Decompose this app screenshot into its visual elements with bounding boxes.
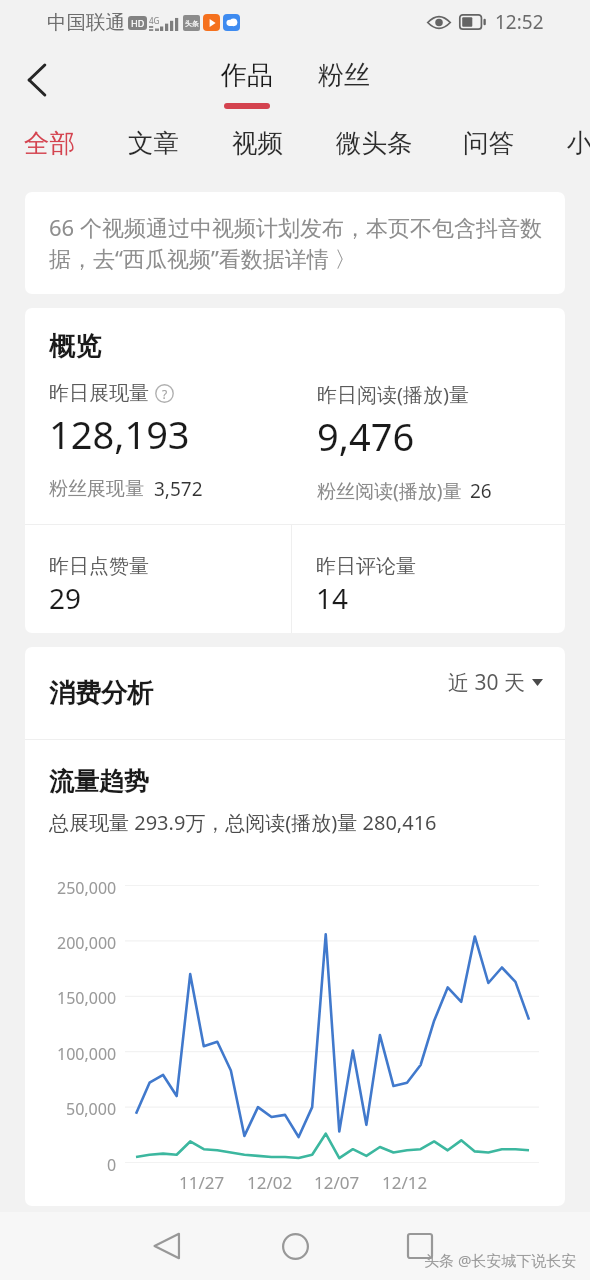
staticText: 全部: [24, 127, 75, 159]
button[interactable]: 文章: [128, 127, 179, 159]
button[interactable]: 小: [567, 127, 590, 159]
button[interactable]: 全部: [24, 127, 75, 159]
button[interactable]: Recents: [392, 1218, 448, 1274]
button[interactable]: 问答: [463, 127, 514, 159]
staticText: 12/12: [382, 1171, 428, 1194]
staticText: 12/07: [314, 1171, 360, 1194]
staticText: 昨日点赞量: [49, 554, 149, 579]
staticText: 26: [470, 478, 492, 504]
staticText: 昨日阅读(播放)量: [317, 381, 469, 408]
staticText: 0: [107, 1154, 117, 1176]
staticText: 粉丝阅读(播放)量: [317, 478, 462, 504]
staticText: 14: [316, 579, 349, 617]
staticText: 12:52: [495, 9, 544, 35]
staticText: 昨日评论量: [316, 554, 416, 579]
staticText: 粉丝展现量: [49, 477, 144, 501]
staticText: 小: [567, 127, 590, 159]
staticText: 概览: [49, 330, 101, 363]
staticText: 29: [49, 579, 82, 617]
staticText: 128,193: [49, 408, 190, 460]
button[interactable]: 视频: [232, 127, 283, 159]
button[interactable]: Home: [267, 1218, 323, 1274]
staticText: 近 30 天: [448, 668, 525, 697]
button[interactable]: 粉丝: [318, 59, 370, 92]
button[interactable]: 微头条: [336, 127, 413, 159]
staticText: 总展现量 293.9万，总阅读(播放)量 280,416: [49, 809, 437, 836]
staticText: 66 个视频通过中视频计划发布，本页不包含抖音数据，去“西瓜视频”看数据详情 〉: [49, 212, 549, 274]
button[interactable]: 近 30 天: [448, 668, 543, 697]
staticText: 150,000: [57, 987, 117, 1009]
staticText: 视频: [232, 127, 283, 159]
button[interactable]: Back: [139, 1218, 195, 1274]
staticText: 问答: [463, 127, 514, 159]
staticText: 3,572: [154, 476, 203, 502]
staticText: 11/27: [179, 1171, 225, 1194]
staticText: 流量趋势: [49, 766, 149, 797]
staticText: 头条 @长安城下说长安: [424, 1250, 577, 1270]
staticText: 12/02: [247, 1171, 293, 1194]
staticText: 昨日展现量: [49, 381, 149, 406]
staticText: 100,000: [57, 1043, 117, 1065]
staticText: 头条: [185, 19, 199, 28]
staticText: 250,000: [57, 877, 117, 899]
staticText: 50,000: [66, 1098, 117, 1120]
staticText: HD: [131, 17, 145, 29]
staticText: 作品: [221, 59, 273, 92]
staticText: 9,476: [317, 410, 415, 462]
button[interactable]: Back: [14, 56, 62, 104]
staticText: 文章: [128, 127, 179, 159]
staticText: 消费分析: [49, 677, 153, 710]
staticText: 4G: [149, 15, 160, 26]
staticText: ?: [162, 386, 168, 402]
staticText: 中国联通: [47, 10, 125, 35]
staticText: 200,000: [57, 932, 117, 954]
staticText: 粉丝: [318, 59, 370, 92]
staticText: 微头条: [336, 127, 413, 159]
button[interactable]: 作品: [221, 59, 273, 109]
button[interactable]: 66 个视频通过中视频计划发布，本页不包含抖音数据，去“西瓜视频”看数据详情 〉: [25, 192, 565, 294]
